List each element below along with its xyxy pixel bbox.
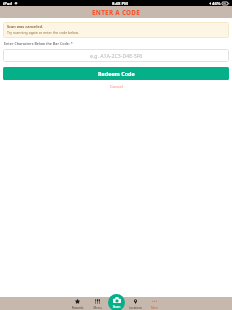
button[interactable]: More: [145, 297, 164, 310]
staticText: Scan was canceled.: [7, 24, 43, 29]
staticText: e.g. A1A-2C3-D4E-5F6: [90, 52, 143, 59]
staticText: 8:48 PM: [112, 1, 129, 7]
staticText: Redeem Code: [98, 70, 135, 77]
button[interactable]: Scan: [108, 294, 125, 310]
button[interactable]: Locations: [126, 297, 145, 310]
staticText: Menu: [88, 306, 107, 310]
staticText: iPad: [3, 1, 13, 7]
staticText: Cancel: [110, 84, 123, 90]
staticText: Locations: [126, 306, 145, 310]
button[interactable]: Rewards: [68, 297, 87, 310]
staticText: Rewards: [68, 306, 87, 310]
staticText: 46%: [212, 1, 221, 7]
staticText: More: [145, 306, 164, 310]
button[interactable]: e.g. A1A-2C3-D4E-5F6: [3, 49, 229, 62]
staticText: ENTER A CODE: [92, 8, 141, 16]
button[interactable]: Menu: [88, 297, 107, 310]
button[interactable]: Cancel: [105, 83, 128, 91]
staticText: Try scanning again or enter the code bel…: [7, 30, 79, 35]
staticText: Enter Characters Below the Bar Code: *: [4, 41, 73, 46]
button[interactable]: Redeem Code: [3, 67, 229, 80]
staticText: Scan: [108, 304, 125, 309]
